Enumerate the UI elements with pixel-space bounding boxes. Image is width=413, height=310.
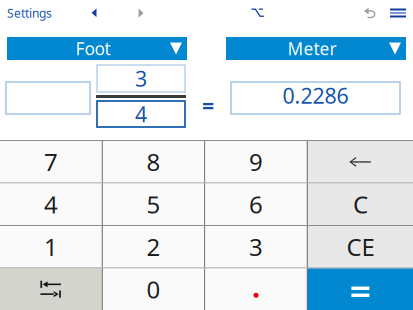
staticText: 2 bbox=[147, 231, 161, 263]
button[interactable]: Backspace bbox=[308, 141, 413, 182]
staticText: Foot bbox=[75, 37, 110, 60]
button[interactable]: 9 bbox=[205, 141, 307, 182]
staticText: 9 bbox=[249, 146, 263, 178]
staticText: 6 bbox=[249, 188, 263, 220]
button[interactable]: 1 bbox=[0, 226, 102, 267]
button[interactable]: 6 bbox=[205, 183, 307, 225]
button[interactable]: Meter bbox=[226, 38, 406, 59]
staticText: 7 bbox=[44, 146, 58, 178]
staticText: 8 bbox=[147, 146, 161, 178]
button[interactable]: 4 bbox=[0, 183, 102, 225]
button[interactable]: 5 bbox=[103, 183, 204, 225]
staticText: 3 bbox=[249, 231, 263, 263]
button[interactable]: Menu bbox=[387, 0, 409, 26]
button[interactable]: Foot bbox=[7, 38, 187, 59]
button[interactable]: C bbox=[308, 183, 413, 225]
button[interactable]: CE bbox=[308, 226, 413, 267]
button[interactable]: Settings bbox=[7, 0, 67, 26]
button[interactable]: Switch entry field bbox=[0, 268, 102, 310]
staticText: 1 bbox=[44, 231, 58, 263]
staticText: 0 bbox=[147, 273, 161, 305]
button[interactable]: Undo bbox=[358, 0, 382, 26]
staticText: = bbox=[202, 91, 214, 119]
button[interactable]: Previous unit bbox=[82, 0, 106, 26]
button[interactable]: 8 bbox=[103, 141, 204, 182]
staticText: 3 bbox=[135, 64, 147, 93]
button[interactable] bbox=[6, 82, 90, 114]
staticText: 5 bbox=[147, 188, 161, 220]
button[interactable]: 3 bbox=[97, 65, 185, 92]
staticText: CE bbox=[346, 231, 374, 263]
staticText: 4 bbox=[44, 188, 58, 220]
button[interactable]: Swap units bbox=[243, 0, 273, 26]
button[interactable]: 2 bbox=[103, 226, 204, 267]
staticText: C bbox=[353, 188, 368, 220]
button[interactable]: 7 bbox=[0, 141, 102, 182]
button[interactable]: Next unit bbox=[129, 0, 153, 26]
staticText: Settings bbox=[7, 5, 52, 21]
button[interactable]: 4 bbox=[97, 101, 185, 127]
button[interactable]: Equals bbox=[308, 268, 413, 310]
button[interactable]: 0 bbox=[103, 268, 204, 310]
button[interactable]: 3 bbox=[205, 226, 307, 267]
staticText: 0.2286 bbox=[282, 81, 348, 110]
button[interactable]: Decimal point bbox=[205, 268, 307, 310]
staticText: Meter bbox=[287, 37, 336, 60]
staticText: 4 bbox=[135, 100, 147, 128]
button[interactable]: 0.2286 bbox=[231, 82, 400, 114]
